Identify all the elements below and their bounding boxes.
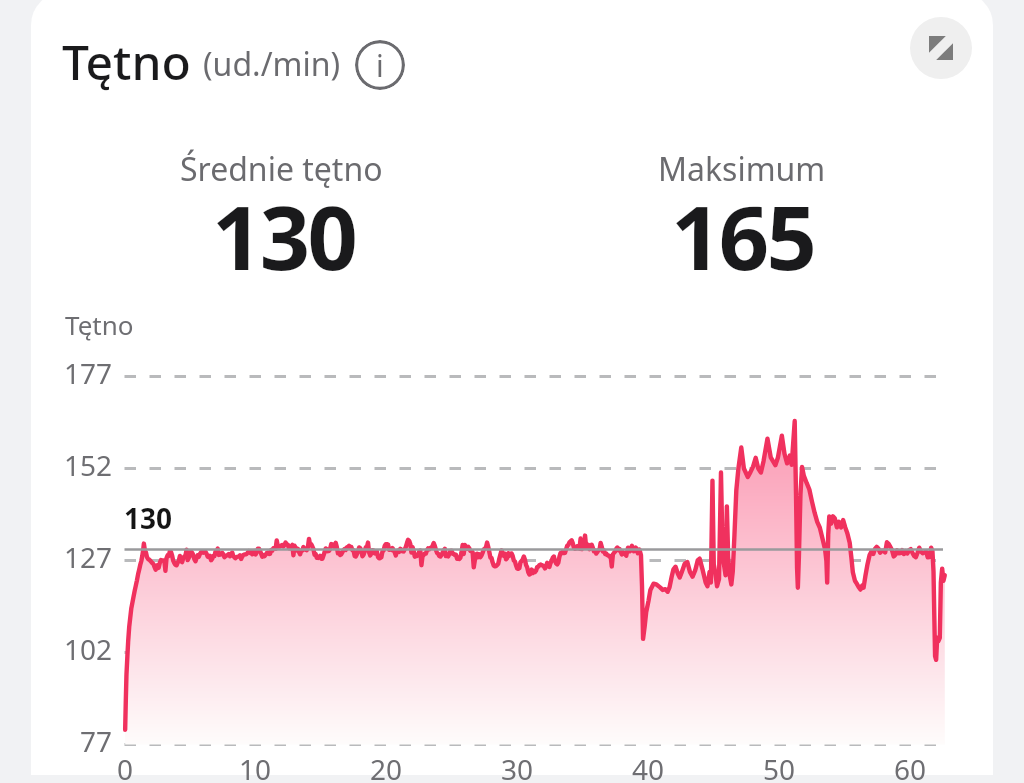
staticText: 20 <box>370 750 403 783</box>
staticText: Średnie tętno <box>180 147 383 191</box>
staticText: 50 <box>763 750 796 783</box>
staticText: i <box>376 45 384 86</box>
staticText: 130 <box>212 176 356 296</box>
staticText: Maksimum <box>658 147 826 191</box>
staticText: Tętno <box>62 29 191 94</box>
staticText: 10 <box>239 750 272 783</box>
staticText: 30 <box>501 750 534 783</box>
button[interactable]: Expand chart <box>910 17 972 79</box>
staticText: Tętno <box>65 307 134 342</box>
staticText: 0 <box>117 750 134 783</box>
staticText: 102 <box>64 630 113 668</box>
staticText: 127 <box>64 538 113 576</box>
staticText: 40 <box>632 750 665 783</box>
staticText: 177 <box>64 354 113 392</box>
staticText: 165 <box>671 176 815 296</box>
staticText: 152 <box>64 446 113 484</box>
button[interactable]: Info <box>355 40 405 90</box>
staticText: (ud./min) <box>203 42 341 86</box>
staticText: 60 <box>894 750 927 783</box>
staticText: 77 <box>80 722 113 760</box>
staticText: 130 <box>124 499 173 537</box>
